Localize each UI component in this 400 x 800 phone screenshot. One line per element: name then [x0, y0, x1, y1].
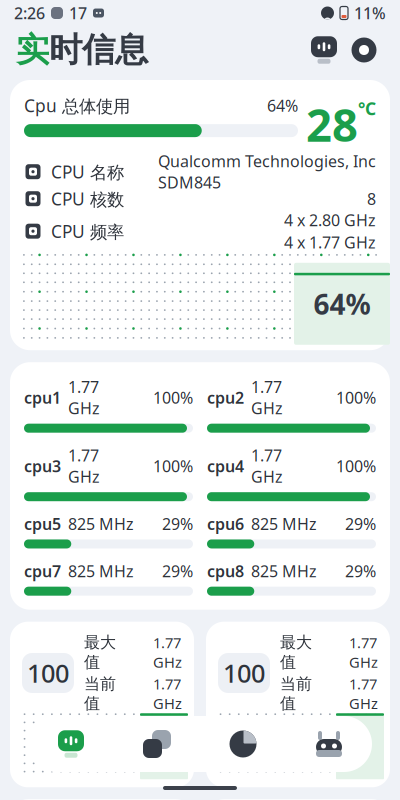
staticText: 1.77GHz	[349, 674, 378, 713]
staticText: 29%	[345, 560, 376, 582]
staticText: 29%	[345, 513, 376, 534]
staticText: 1.77 GHz	[251, 445, 283, 487]
staticText: 1.77GHz	[153, 674, 182, 713]
staticText: CPU 频率	[51, 220, 124, 243]
staticText: 100%	[153, 455, 193, 476]
staticText: cpu3	[24, 455, 61, 476]
staticText: 最大值	[84, 633, 116, 672]
staticText: °C	[358, 97, 376, 120]
staticText: 29%	[162, 560, 193, 582]
staticText: 11%	[354, 2, 386, 24]
staticText: Qualcomm Technologies, Inc SDM845	[158, 150, 376, 193]
staticText: 2:26	[14, 2, 45, 24]
button[interactable]: 实时信息	[28, 716, 114, 772]
staticText: 100%	[336, 387, 376, 408]
staticText: 当前值	[280, 674, 312, 713]
button[interactable]: 设置	[344, 30, 384, 70]
staticText: 64%	[267, 95, 298, 116]
staticText: 4 x 1.77 GHz	[284, 232, 376, 253]
staticText: 8	[367, 188, 376, 209]
staticText: 825 MHz	[68, 513, 134, 534]
staticText: 825 MHz	[251, 513, 317, 534]
staticText: 最大值	[280, 633, 312, 672]
staticText: 1.77GHz	[153, 633, 182, 672]
button[interactable]: 存储	[200, 716, 286, 772]
staticText: 17	[69, 2, 87, 24]
staticText: 825 MHz	[68, 560, 134, 582]
staticText: CPU 名称	[51, 160, 124, 183]
staticText: cpu5	[24, 513, 61, 534]
staticText: cpu4	[207, 455, 244, 476]
staticText: 825 MHz	[251, 560, 317, 582]
button[interactable]: 设备	[114, 716, 200, 772]
staticText: 当前值	[84, 674, 116, 713]
staticText: Cpu 总体使用	[24, 94, 130, 117]
staticText: 100	[27, 656, 69, 690]
button[interactable]: 系统	[286, 716, 372, 772]
staticText: 实	[16, 29, 49, 70]
staticText: cpu6	[207, 513, 244, 534]
staticText: 100	[223, 656, 265, 690]
staticText: cpu1	[24, 387, 61, 408]
staticText: 1.77GHz	[349, 633, 378, 672]
staticText: 时信息	[49, 29, 148, 70]
staticText: 4 x 2.80 GHz	[284, 209, 376, 231]
button[interactable]: 监控	[304, 30, 344, 70]
staticText: CPU 核数	[51, 187, 124, 210]
staticText: 29%	[162, 513, 193, 534]
staticText: cpu2	[207, 387, 244, 408]
staticText: cpu7	[24, 560, 61, 582]
staticText: 1.77 GHz	[68, 445, 100, 487]
staticText: 100%	[336, 455, 376, 476]
staticText: cpu8	[207, 560, 244, 582]
staticText: 1.77 GHz	[68, 376, 100, 419]
staticText: 64%	[313, 285, 370, 322]
staticText: 100%	[153, 387, 193, 408]
staticText: 1.77 GHz	[251, 376, 283, 419]
staticText: 28	[306, 94, 358, 154]
